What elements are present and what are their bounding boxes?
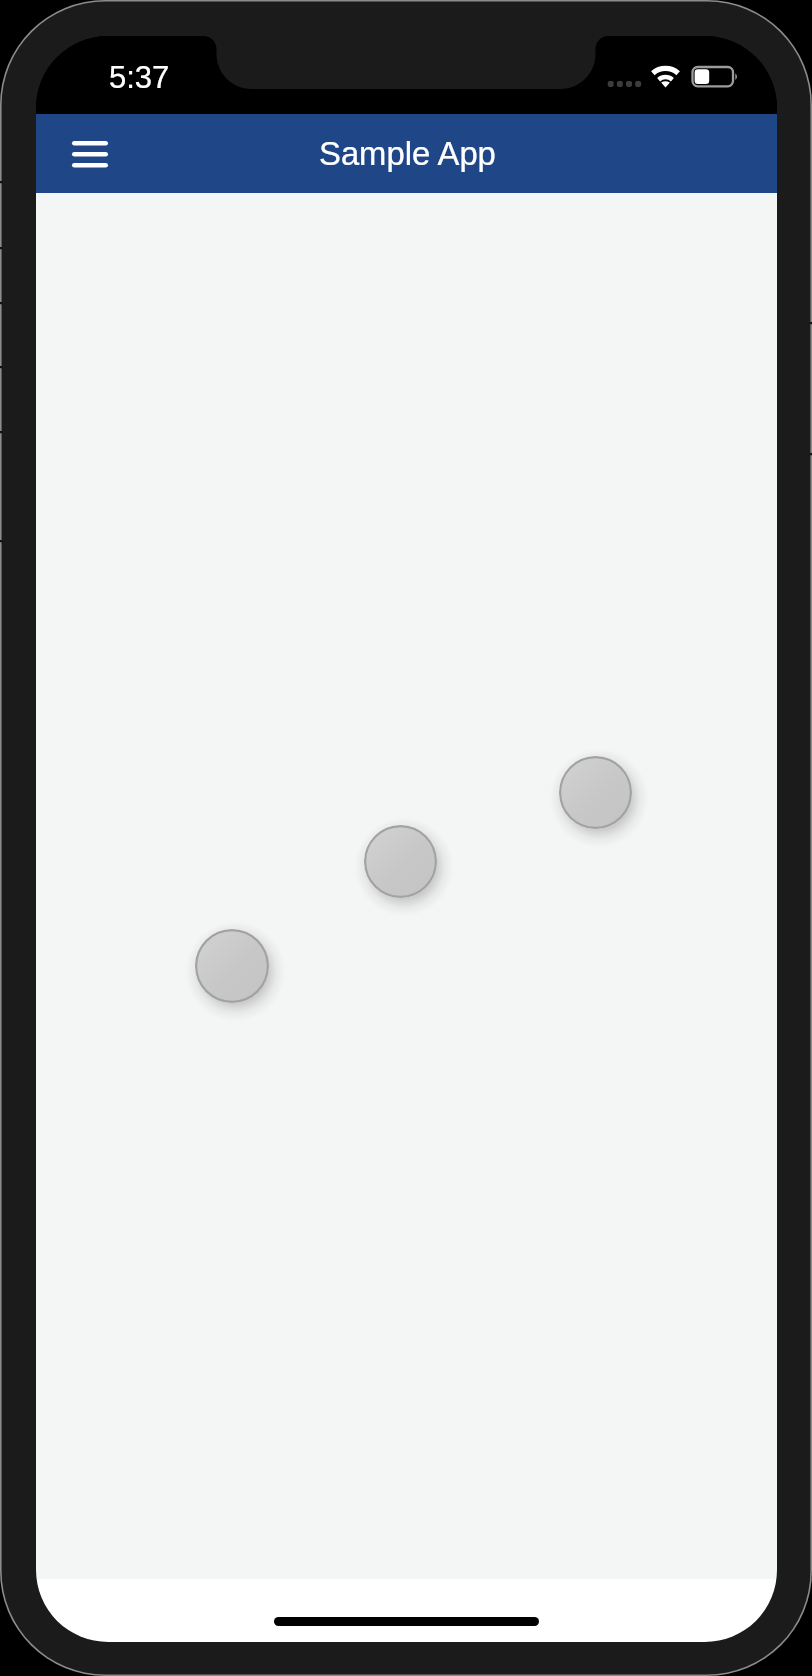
staticText: 5:37 bbox=[109, 60, 170, 95]
button[interactable]: Node bbox=[559, 756, 632, 829]
staticText: Sample App bbox=[319, 135, 496, 172]
button[interactable]: Open navigation menu bbox=[54, 118, 126, 190]
button[interactable]: Node bbox=[195, 929, 269, 1003]
button[interactable]: Node bbox=[364, 825, 437, 898]
